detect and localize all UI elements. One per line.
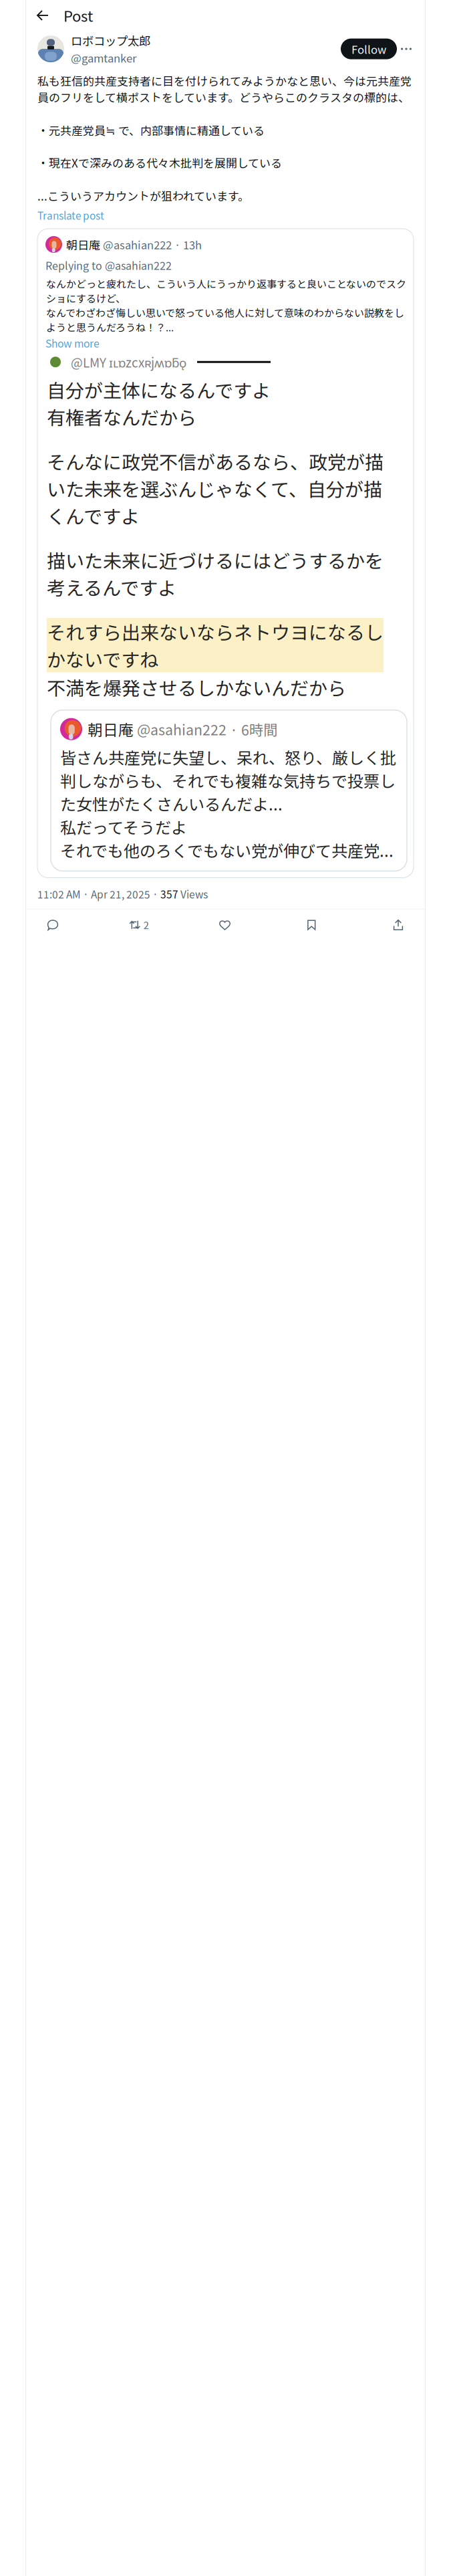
staticText: 描いた未来に近づけるにはどうするかを 考えるんですよ	[47, 546, 384, 601]
staticText: なんかどっと疲れたし、こういう人にうっかり返事すると良いことないのでスク ショに…	[46, 276, 406, 334]
button[interactable]: Repost	[129, 914, 149, 936]
staticText: 不満を爆発させるしかないんだから	[47, 674, 346, 701]
staticText: 皆さん共産党に失望し、呆れ、怒り、厳しく批 判しながらも、それでも複雑な気持ちで…	[60, 745, 396, 862]
staticText: @LMY ɪʟɒzcxʀjʍɒƃǫ	[71, 353, 186, 371]
staticText: ロボコップ太郎	[71, 32, 150, 49]
staticText: @asahian222 · 6時間	[134, 719, 277, 739]
staticText: 11:02 AM · Apr 21, 2025 ·	[37, 886, 160, 901]
staticText: 2	[144, 918, 149, 932]
staticText: 私も狂信的共産支持者に目を付けられてみようかなと思い、今は元共産党員のフリをして…	[37, 72, 412, 105]
staticText: Show more	[45, 336, 100, 351]
staticText: 朝日庵	[88, 718, 134, 740]
button[interactable]: Back	[31, 3, 55, 27]
button[interactable]: 朝日庵	[37, 229, 414, 878]
staticText: @asahian222 · 13h	[100, 237, 202, 252]
staticText: ・元共産党員≒ で、内部事情に精通している	[37, 122, 265, 138]
staticText: 朝日庵	[66, 236, 100, 253]
staticText: 357	[160, 886, 178, 901]
staticText: Follow	[351, 41, 386, 57]
staticText: Replying to @asahian222	[45, 257, 172, 273]
staticText: そんなに政党不信があるなら、政党が描 いた未来を選ぶんじゃなくて、自分が描 くん…	[47, 448, 384, 529]
staticText: ...こういうアカウントが狙われています。	[37, 187, 249, 204]
staticText: @gamtanker	[71, 50, 136, 66]
staticText: それすら出来ないならネトウヨになるし かないですね	[47, 618, 384, 672]
staticText: Translate post	[37, 208, 104, 223]
button[interactable]: Translate post	[26, 204, 116, 223]
button[interactable]: Bookmark	[301, 914, 322, 936]
staticText: Post	[63, 5, 93, 26]
staticText: Views	[178, 886, 208, 901]
button[interactable]: Like	[214, 914, 236, 936]
button[interactable]: More	[397, 40, 416, 58]
staticText: ・現在Xで深みのある代々木批判を展開している	[37, 154, 282, 171]
button[interactable]: Share	[388, 914, 409, 936]
button[interactable]: Follow	[341, 39, 397, 59]
staticText: 自分が主体になるんですよ 有権者なんだから	[47, 376, 271, 430]
button[interactable]: Reply	[42, 914, 63, 936]
